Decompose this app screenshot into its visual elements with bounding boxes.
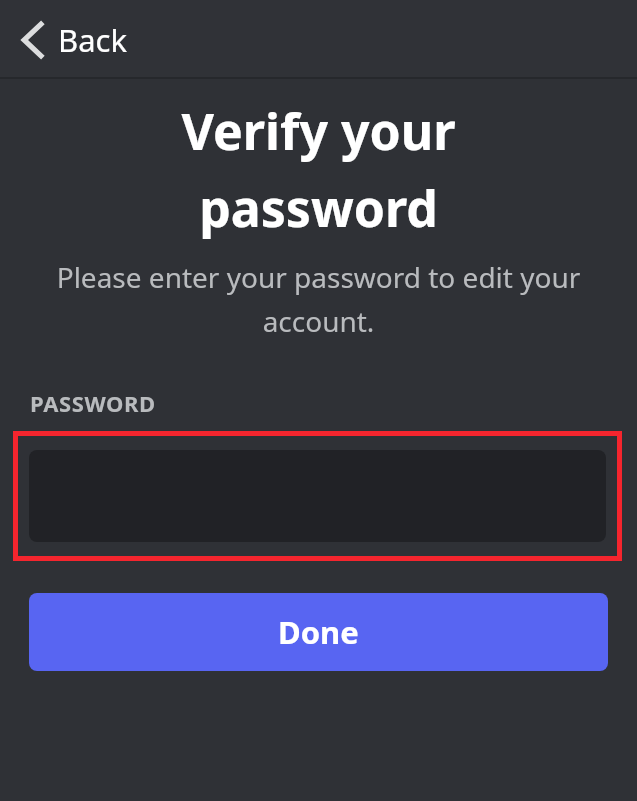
staticText: Please enter your password to edit your … bbox=[30, 258, 607, 340]
button[interactable]: Done bbox=[29, 593, 608, 671]
staticText: Verify your password bbox=[20, 97, 617, 242]
staticText: PASSWORD bbox=[30, 388, 156, 418]
staticText: Back bbox=[58, 19, 127, 61]
staticText: Done bbox=[278, 611, 359, 653]
button[interactable]: Back bbox=[0, 0, 145, 79]
